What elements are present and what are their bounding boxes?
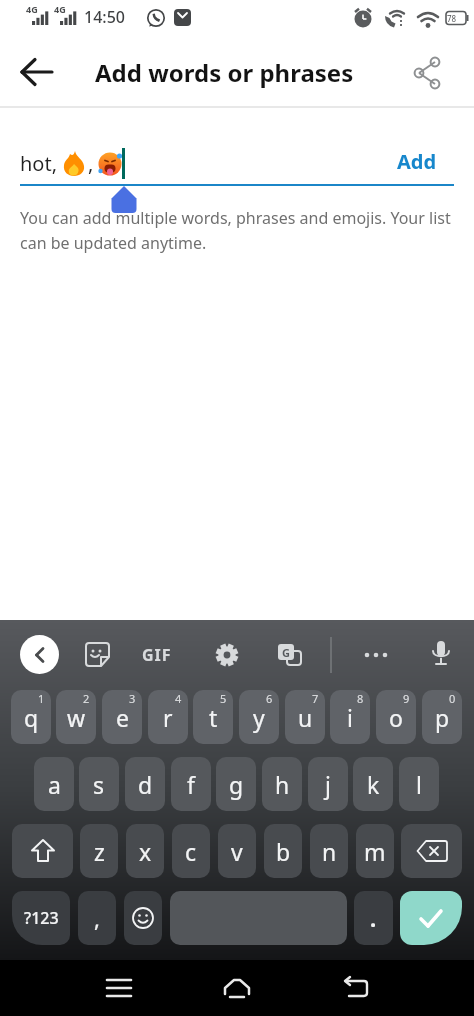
staticText: h xyxy=(275,769,290,800)
staticText: 7 xyxy=(312,691,319,706)
staticText: d xyxy=(138,769,153,800)
staticText: a xyxy=(48,769,61,800)
button[interactable] xyxy=(401,824,462,878)
button[interactable]: c xyxy=(172,824,210,878)
staticText: G xyxy=(282,645,290,660)
staticText: g xyxy=(229,769,244,800)
staticText: 3 xyxy=(129,691,136,706)
button[interactable]: u xyxy=(285,690,325,744)
button[interactable] xyxy=(84,641,111,668)
staticText: 1 xyxy=(38,691,45,706)
staticText: 8 xyxy=(357,691,364,706)
staticText: v xyxy=(231,836,243,867)
button[interactable]: j xyxy=(308,757,348,811)
staticText: 4G xyxy=(26,3,38,15)
button[interactable]: h xyxy=(262,757,302,811)
staticText: i xyxy=(347,702,353,733)
staticText: n xyxy=(322,836,337,867)
button[interactable]: e xyxy=(102,690,142,744)
button[interactable]: l xyxy=(399,757,439,811)
button[interactable] xyxy=(222,974,252,1002)
staticText: . xyxy=(370,903,377,933)
button[interactable] xyxy=(104,974,134,1002)
staticText: e xyxy=(116,702,129,733)
button[interactable]: . xyxy=(354,891,393,945)
button[interactable]: s xyxy=(79,757,119,811)
button[interactable]: , xyxy=(78,891,116,945)
button[interactable]: i xyxy=(330,690,370,744)
staticText: , xyxy=(94,903,100,933)
staticText: GIF xyxy=(142,644,172,666)
button[interactable]: w xyxy=(56,690,96,744)
staticText: p xyxy=(435,702,450,733)
staticText: Add xyxy=(397,148,437,175)
button[interactable]: p xyxy=(422,690,462,744)
staticText: b xyxy=(276,836,291,867)
staticText: 4 xyxy=(175,691,182,706)
staticText: hot, xyxy=(20,150,58,177)
staticText: f xyxy=(187,769,195,800)
button[interactable]: v xyxy=(218,824,256,878)
button[interactable] xyxy=(213,641,241,669)
button[interactable]: q xyxy=(11,690,51,744)
button[interactable]: z xyxy=(80,824,118,878)
staticText: m xyxy=(364,836,386,867)
staticText: w xyxy=(67,702,86,733)
staticText: 78 xyxy=(447,13,457,24)
button[interactable] xyxy=(12,824,73,878)
button[interactable]: G xyxy=(276,641,304,669)
button[interactable] xyxy=(8,57,64,87)
button[interactable]: GIF xyxy=(136,644,178,666)
button[interactable]: k xyxy=(353,757,393,811)
staticText: k xyxy=(367,769,380,800)
button[interactable]: ?123 xyxy=(12,891,70,945)
staticText: j xyxy=(325,769,331,800)
staticText: 2 xyxy=(83,691,90,706)
button[interactable]: m xyxy=(356,824,394,878)
button[interactable]: Add xyxy=(390,144,444,178)
button[interactable] xyxy=(124,891,162,945)
staticText: c xyxy=(185,836,197,867)
button[interactable]: y xyxy=(239,690,279,744)
staticText: You can add multiple words, phrases and … xyxy=(20,207,451,229)
button[interactable]: x xyxy=(126,824,164,878)
button[interactable]: g xyxy=(216,757,256,811)
button[interactable]: f xyxy=(171,757,211,811)
button[interactable] xyxy=(360,641,392,669)
button[interactable]: b xyxy=(264,824,302,878)
staticText: r xyxy=(163,702,173,733)
staticText: 5 xyxy=(220,691,227,706)
staticText: 6 xyxy=(266,691,273,706)
button[interactable]: o xyxy=(376,690,416,744)
staticText: x xyxy=(139,836,152,867)
button[interactable] xyxy=(341,974,371,1002)
staticText: 0 xyxy=(449,691,456,706)
button[interactable] xyxy=(20,635,59,674)
staticText: y xyxy=(253,702,265,733)
button[interactable] xyxy=(400,891,462,945)
button[interactable] xyxy=(428,639,454,671)
staticText: ?123 xyxy=(24,907,59,929)
staticText: t xyxy=(209,702,218,733)
staticText: u xyxy=(298,702,313,733)
staticText: l xyxy=(416,769,422,800)
staticText: 4G xyxy=(54,3,66,15)
button[interactable]: a xyxy=(34,757,74,811)
button[interactable] xyxy=(170,891,347,945)
staticText: can be updated anytime. xyxy=(20,232,207,254)
button[interactable]: d xyxy=(125,757,165,811)
staticText: Add words or phrases xyxy=(95,56,354,89)
staticText: q xyxy=(24,702,39,733)
staticText: s xyxy=(93,769,105,800)
staticText: z xyxy=(94,836,105,867)
button[interactable]: r xyxy=(148,690,188,744)
staticText: , xyxy=(88,150,94,177)
staticText: 14:50 xyxy=(84,6,125,28)
button[interactable]: n xyxy=(310,824,348,878)
staticText: 9 xyxy=(403,691,410,706)
button[interactable]: t xyxy=(193,690,233,744)
staticText: o xyxy=(389,702,403,733)
button[interactable] xyxy=(408,55,448,91)
